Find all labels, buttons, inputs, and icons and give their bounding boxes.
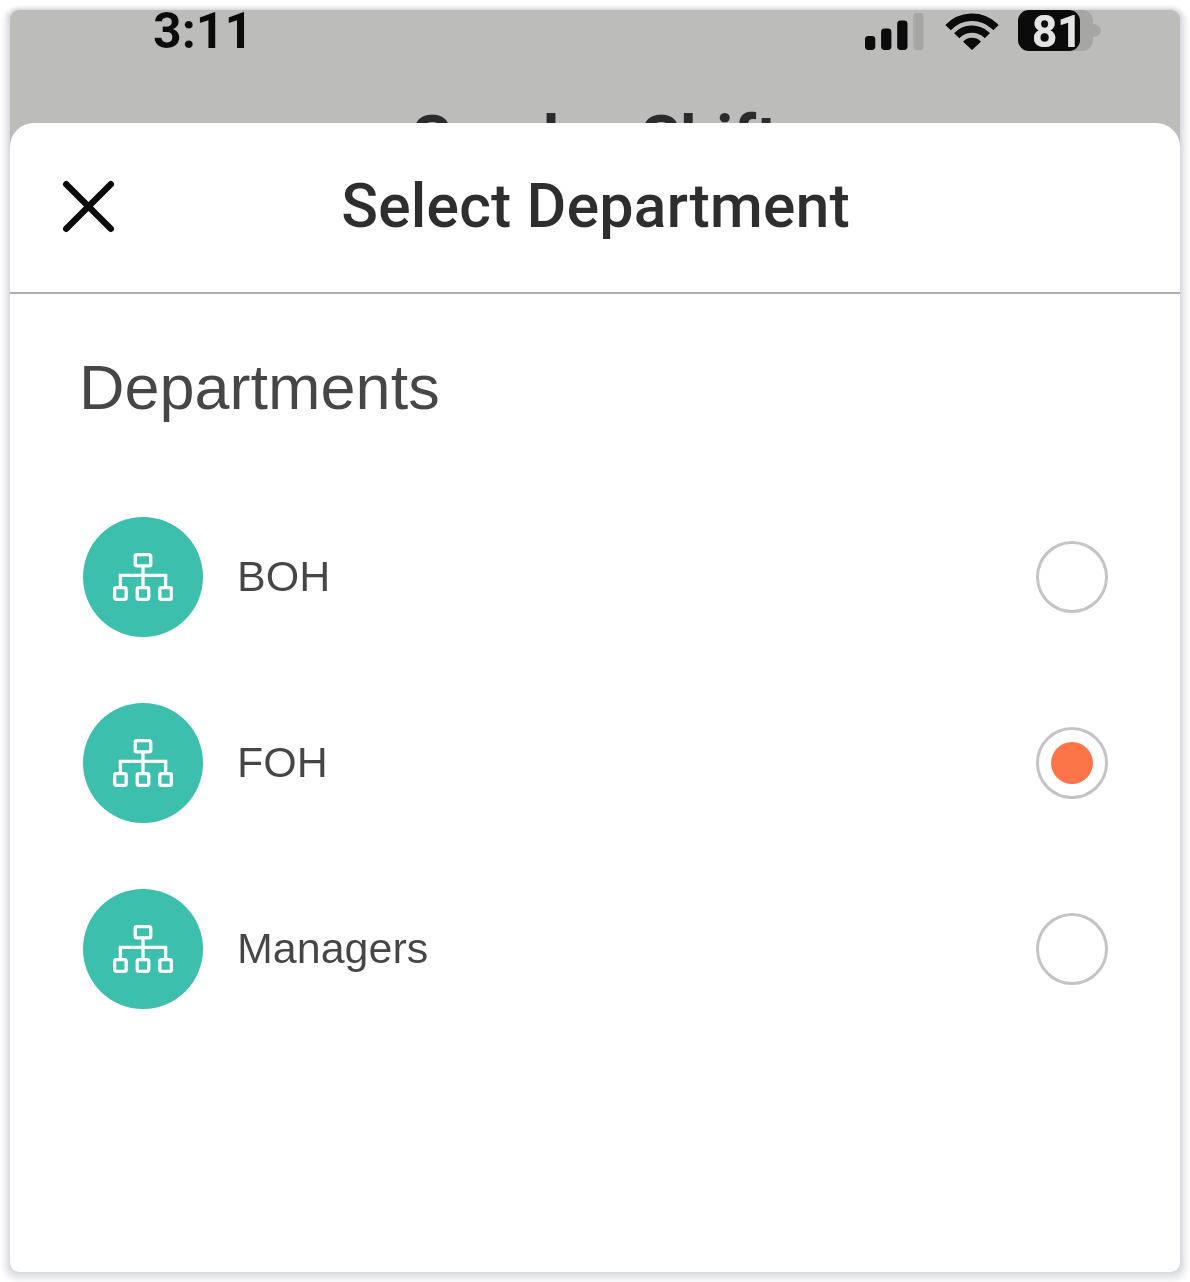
button[interactable]: BOH [10,484,1180,670]
staticText: Select Department [341,170,850,241]
staticText: FOH [237,738,328,786]
other: Cellular signal [865,12,924,50]
button[interactable]: Close [38,156,138,256]
button[interactable]: Managers [10,856,1180,1042]
other: Battery 81 percent [1018,10,1093,51]
staticText: Departments [79,352,440,422]
other: Wi-Fi [946,11,998,50]
staticText: BOH [237,552,331,600]
button[interactable]: FOH [10,670,1180,856]
staticText: Sunday Shift [412,102,778,177]
staticText: Managers [237,924,429,972]
staticText: 81 [1032,10,1083,47]
staticText: 3:11 [153,10,254,61]
